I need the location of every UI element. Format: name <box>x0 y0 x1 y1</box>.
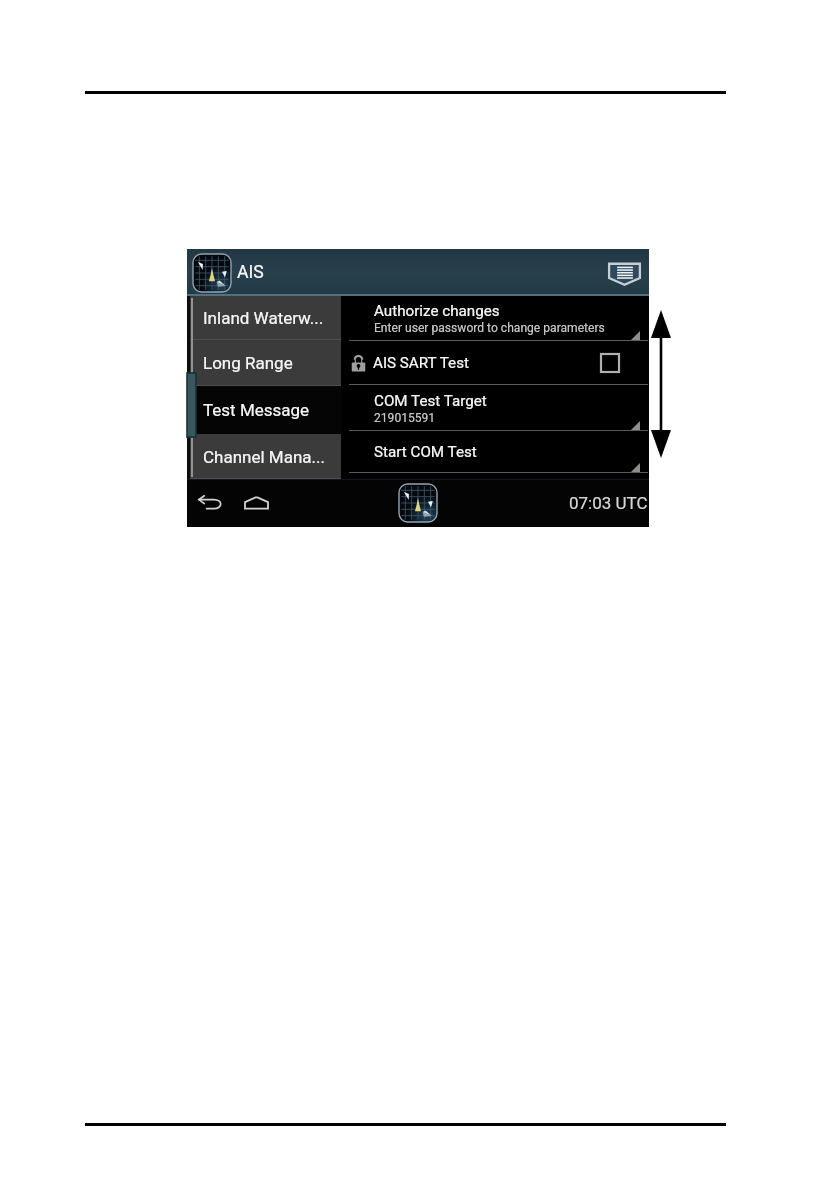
button[interactable]: Channel Mana... <box>187 434 341 479</box>
staticText: 07:03 UTC <box>569 493 648 513</box>
staticText: Authorize changes <box>374 302 500 320</box>
button[interactable]: Test Message <box>187 386 341 434</box>
staticText: AIS SART Test <box>373 354 469 372</box>
staticText: Enter user password to change parameters <box>374 321 605 335</box>
button[interactable]: Menu <box>603 254 645 292</box>
button[interactable]: Start COM Test <box>341 431 649 473</box>
staticText: Long Range <box>203 353 293 373</box>
button[interactable]: Authorize changes <box>341 296 649 341</box>
button[interactable]: AIS <box>399 484 437 522</box>
button[interactable]: AIS SART Test <box>341 341 649 385</box>
button[interactable]: Long Range <box>187 340 341 386</box>
button[interactable]: COM Test Target <box>341 385 649 431</box>
button[interactable]: AIS SART Test checkbox <box>600 353 620 373</box>
button[interactable]: AIS <box>187 249 649 296</box>
staticText: Inland Waterw... <box>203 308 324 328</box>
button[interactable]: Home <box>238 485 274 521</box>
button[interactable]: Back <box>192 485 228 521</box>
staticText: COM Test Target <box>374 392 487 410</box>
staticText: Channel Mana... <box>203 447 325 467</box>
staticText: AIS <box>237 262 264 283</box>
staticText: Start COM Test <box>374 443 477 461</box>
button[interactable]: Inland Waterw... <box>187 296 341 340</box>
staticText: Test Message <box>203 400 310 420</box>
staticText: 219015591 <box>374 411 436 425</box>
